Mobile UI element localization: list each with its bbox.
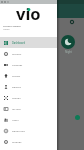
- staticText: Home: [3, 28, 10, 31]
- staticText: Devices: [12, 85, 21, 88]
- staticText: vio: [16, 2, 41, 24]
- button[interactable]: Dealer info: [0, 125, 57, 136]
- button[interactable]: Night mode: [61, 35, 75, 49]
- button[interactable]: Groups: [0, 92, 57, 103]
- staticText: Scenes: [12, 74, 21, 77]
- button[interactable]: Devices: [0, 81, 57, 92]
- button[interactable]: Add: [75, 115, 80, 120]
- staticText: Current System: [3, 24, 21, 27]
- staticText: Cameras: [12, 63, 23, 66]
- button[interactable]: Users: [0, 114, 57, 125]
- staticText: Groups: [12, 96, 21, 99]
- staticText: Security: [12, 52, 22, 55]
- staticText: Night: [65, 50, 72, 54]
- staticText: Users: [12, 118, 19, 121]
- button[interactable]: Settings: [70, 20, 74, 24]
- staticText: My info: [12, 107, 21, 110]
- button[interactable]: Scenes: [0, 70, 57, 81]
- button[interactable]: Security: [0, 48, 57, 59]
- staticText: Dashboard: [12, 41, 26, 44]
- button[interactable]: My info: [0, 103, 57, 114]
- staticText: Dealer info: [12, 129, 25, 132]
- button[interactable]: Dashboard: [0, 37, 57, 48]
- button[interactable]: Settings: [0, 136, 57, 147]
- staticText: Settings: [12, 140, 22, 143]
- button[interactable]: Cameras: [0, 59, 57, 70]
